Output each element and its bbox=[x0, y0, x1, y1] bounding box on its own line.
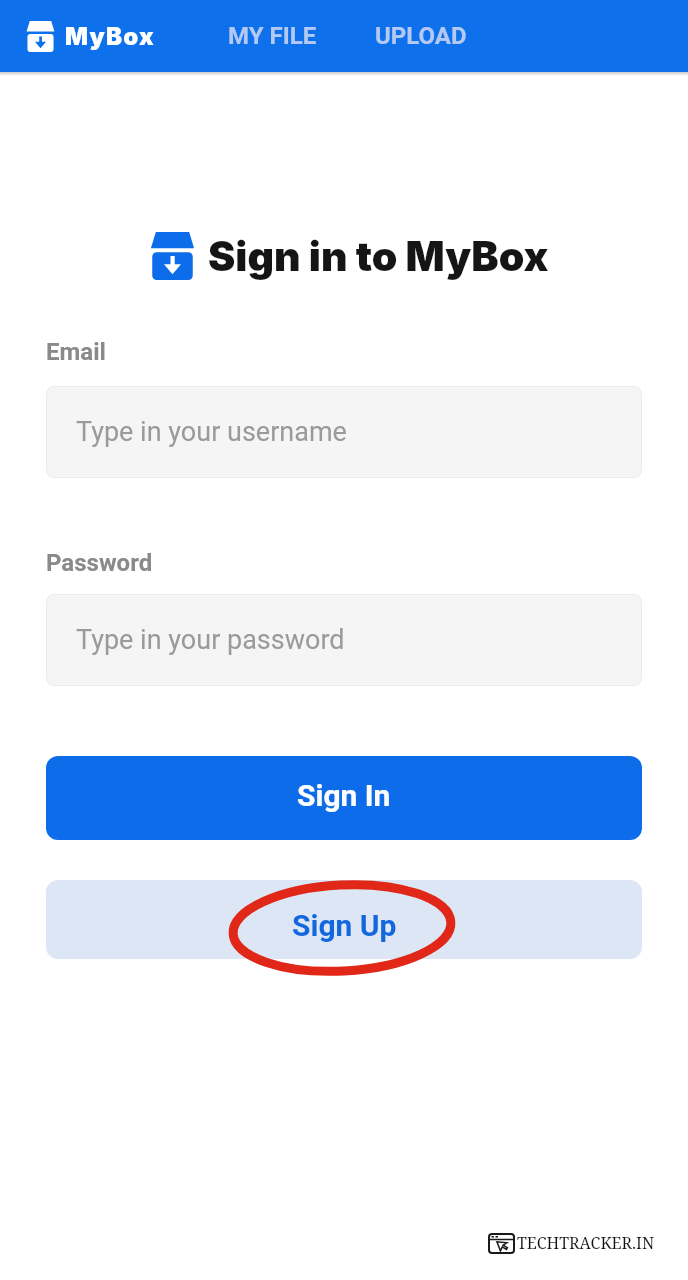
staticText: Type in your username bbox=[76, 416, 347, 448]
button[interactable]: Type in your username bbox=[46, 386, 642, 478]
button[interactable]: Type in your password bbox=[46, 594, 642, 686]
button[interactable]: UPLOAD bbox=[375, 22, 467, 50]
staticText: Password bbox=[46, 549, 153, 577]
staticText: UPLOAD bbox=[375, 22, 467, 50]
staticText: Sign In bbox=[297, 778, 391, 813]
staticText: TECHTRACKER.IN bbox=[517, 1232, 655, 1254]
staticText: Type in your password bbox=[76, 624, 345, 656]
button[interactable]: Sign Up bbox=[46, 880, 642, 959]
staticText: Sign in to MyBox bbox=[208, 231, 549, 281]
staticText: MY FILE bbox=[228, 22, 317, 50]
staticText: Email bbox=[46, 338, 106, 366]
button[interactable]: MY FILE bbox=[228, 22, 317, 50]
button[interactable]: MyBox bbox=[26, 21, 155, 52]
staticText: MyBox bbox=[65, 22, 155, 51]
button[interactable]: Sign In bbox=[46, 756, 642, 840]
staticText: Sign Up bbox=[292, 908, 397, 943]
